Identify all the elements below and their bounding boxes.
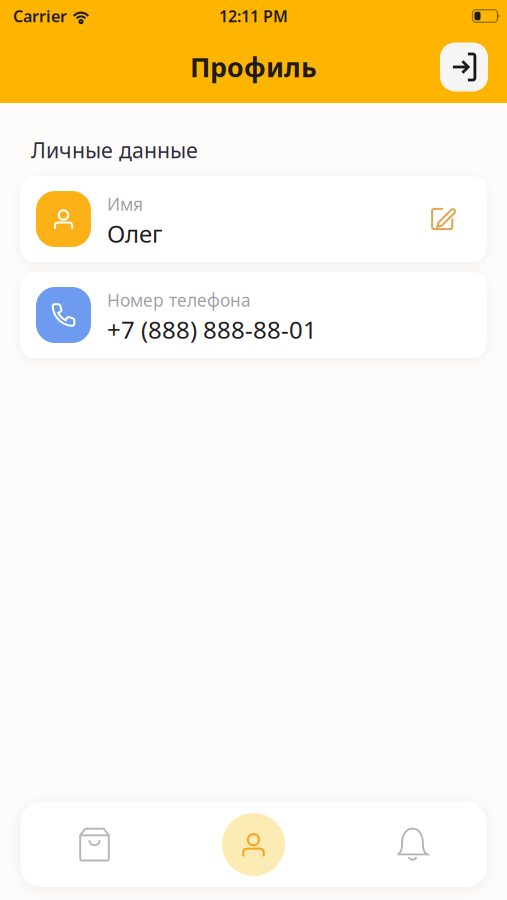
button[interactable]: Номер телефона (20, 272, 487, 358)
button[interactable]: Выход (440, 42, 488, 91)
staticText: Олег (107, 218, 163, 249)
staticText: Профиль (190, 49, 317, 85)
button[interactable]: Имя (20, 176, 487, 262)
staticText: Carrier (13, 5, 67, 27)
button[interactable]: Редактировать (421, 197, 465, 241)
staticText: Личные данные (31, 136, 198, 164)
staticText: Имя (107, 193, 143, 216)
staticText: Номер телефона (107, 289, 251, 312)
button[interactable]: Магазин (50, 802, 138, 887)
button[interactable]: Уведомления (368, 802, 456, 887)
button[interactable]: Профиль (209, 802, 297, 887)
staticText: 12:11 PM (219, 5, 288, 27)
staticText: +7 (888) 888-88-01 (107, 314, 317, 345)
